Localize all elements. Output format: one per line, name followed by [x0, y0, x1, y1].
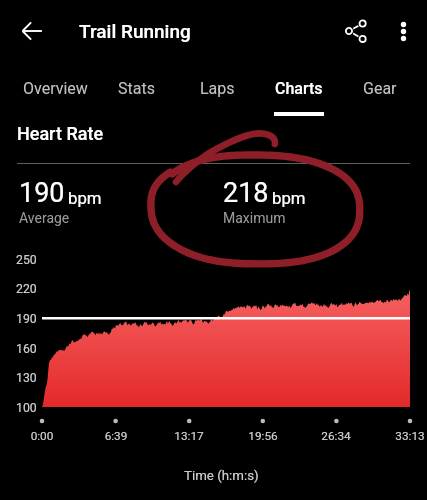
button[interactable]: Gear	[339, 61, 420, 116]
staticText: Trail Running	[79, 20, 191, 42]
staticText: bpm	[68, 188, 102, 208]
staticText: bpm	[272, 188, 306, 208]
staticText: Time (h:m:s)	[184, 468, 259, 484]
staticText: 6:39	[86, 429, 146, 443]
staticText: Heart Rate	[17, 123, 104, 144]
staticText: 13:17	[159, 429, 219, 443]
staticText: Laps	[200, 79, 235, 98]
staticText: Gear	[363, 79, 397, 98]
staticText: 100	[16, 401, 37, 415]
staticText: Maximum	[223, 210, 286, 226]
button[interactable]: Charts	[258, 61, 339, 116]
staticText: 130	[16, 371, 37, 385]
button[interactable]: Laps	[177, 61, 258, 116]
staticText: 33:13	[380, 429, 427, 443]
button[interactable]: Share	[334, 8, 380, 54]
staticText: 190	[19, 177, 65, 209]
staticText: Overview	[23, 79, 88, 98]
staticText: Average	[19, 210, 70, 226]
staticText: Charts	[275, 79, 323, 98]
button[interactable]: Back	[12, 11, 52, 51]
staticText: 220	[16, 282, 37, 296]
staticText: 0:00	[12, 429, 72, 443]
staticText: 218	[223, 177, 269, 209]
staticText: 26:34	[306, 429, 366, 443]
staticText: 160	[16, 342, 37, 356]
staticText: 19:56	[233, 429, 293, 443]
button[interactable]: More options	[382, 10, 424, 52]
button[interactable]: Overview	[15, 61, 96, 116]
staticText: 250	[16, 253, 37, 267]
staticText: Stats	[118, 79, 155, 98]
staticText: 190	[16, 312, 37, 326]
button[interactable]: Stats	[96, 61, 177, 116]
